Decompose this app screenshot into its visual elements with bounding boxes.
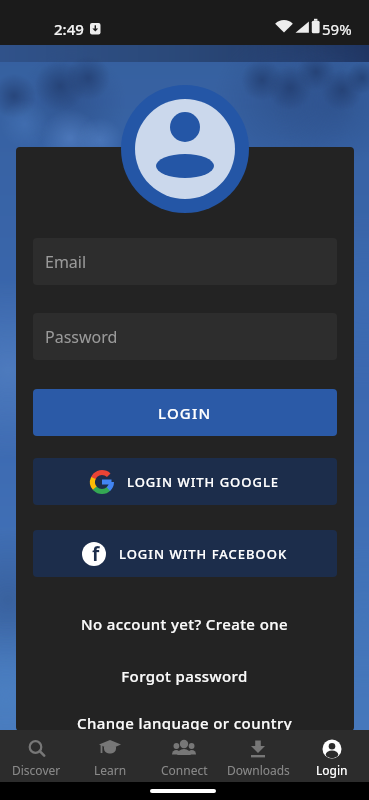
button[interactable]: Email xyxy=(33,238,337,285)
staticText: Login xyxy=(316,762,348,778)
staticText: LOGIN WITH FACEBOOK xyxy=(119,545,288,563)
button[interactable]: Connect xyxy=(147,730,221,782)
button[interactable]: LOGIN xyxy=(33,389,337,436)
button[interactable]: Discover xyxy=(0,730,73,782)
button[interactable]: Learn xyxy=(73,730,147,782)
staticText: f xyxy=(92,542,100,565)
button[interactable]: f xyxy=(33,530,337,577)
staticText: Connect xyxy=(161,762,208,778)
staticText: Password xyxy=(45,326,118,348)
staticText: LOGIN xyxy=(158,403,212,423)
button[interactable]: No account yet? Create one xyxy=(0,614,369,634)
staticText: 59% xyxy=(322,19,352,39)
staticText: Email xyxy=(45,251,87,273)
staticText: LOGIN WITH GOOGLE xyxy=(127,473,280,491)
button[interactable]: Password xyxy=(33,313,337,360)
staticText: Discover xyxy=(12,762,61,778)
button[interactable]: Forgot password xyxy=(0,666,369,686)
button[interactable]: Change language or country xyxy=(0,713,369,733)
button[interactable]: Login xyxy=(295,730,369,782)
button[interactable]: Downloads xyxy=(221,730,295,782)
staticText: Learn xyxy=(94,762,127,778)
staticText: Downloads xyxy=(227,762,290,778)
button[interactable]: LOGIN WITH GOOGLE xyxy=(33,458,337,505)
staticText: 2:49 xyxy=(54,19,84,39)
